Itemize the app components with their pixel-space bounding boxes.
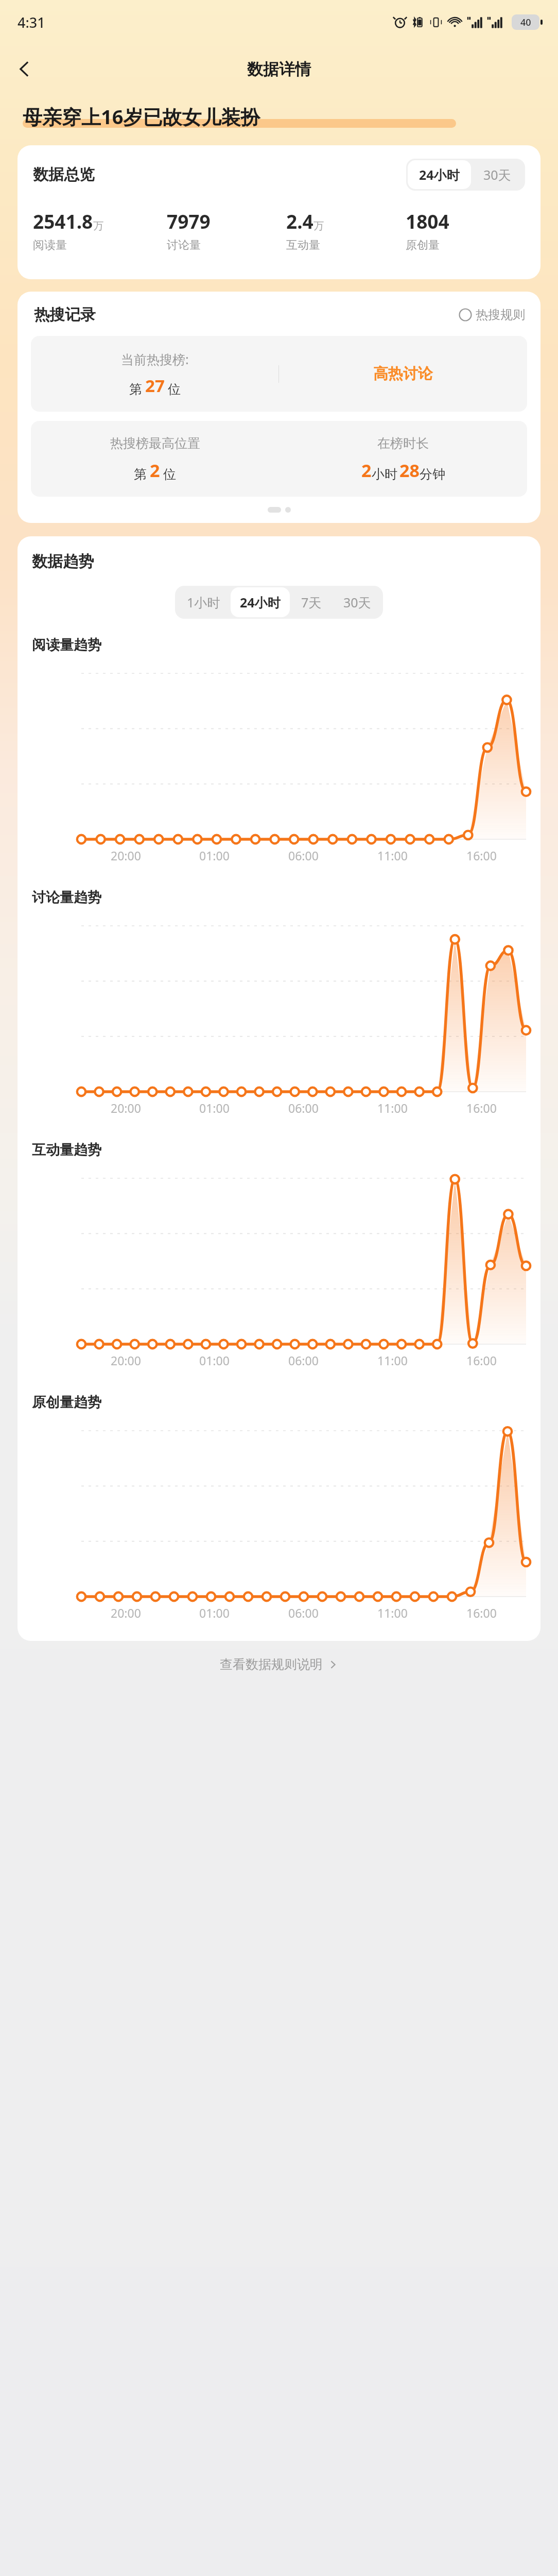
staticText: 互动量 — [286, 238, 320, 252]
staticText: 分钟 — [420, 466, 445, 482]
staticText: 热搜记录 — [34, 305, 96, 325]
staticText: 万 — [313, 219, 324, 232]
button[interactable]: 热搜规则 — [457, 305, 527, 325]
staticText: 1小时 — [187, 594, 220, 611]
button[interactable]: 查看数据规则说明 — [0, 1656, 558, 1672]
staticText: 30天 — [483, 166, 511, 183]
button[interactable]: 30天 — [333, 587, 381, 617]
staticText: 位 — [163, 466, 176, 482]
staticText: 万 — [93, 219, 103, 232]
staticText: 2541.8 — [33, 208, 93, 234]
staticText: 27 — [145, 374, 165, 397]
staticText: 原创量 — [406, 238, 440, 252]
staticText: 数据趋势 — [32, 552, 94, 571]
button[interactable]: Back — [6, 50, 43, 88]
staticText: 11:00 — [377, 848, 408, 863]
staticText: 数据总览 — [33, 165, 95, 184]
staticText: 28 — [399, 459, 420, 482]
staticText: 第 — [134, 466, 147, 482]
button[interactable]: 7天 — [290, 587, 333, 617]
staticText: 11:00 — [377, 1352, 408, 1368]
staticText: 2 — [361, 459, 372, 482]
staticText: 20:00 — [111, 1100, 141, 1116]
staticText: 30天 — [343, 594, 371, 611]
staticText: 11:00 — [377, 1100, 408, 1116]
staticText: 查看数据规则说明 — [220, 1656, 323, 1672]
staticText: 7979 — [167, 208, 211, 234]
staticText: 06:00 — [288, 848, 319, 863]
staticText: 母亲穿上16岁已故女儿装扮 — [23, 103, 260, 130]
button[interactable]: 30天 — [471, 160, 524, 189]
staticText: 2.4 — [286, 208, 313, 234]
staticText: 06:00 — [288, 1100, 319, 1116]
staticText: 阅读量 — [33, 238, 67, 252]
staticText: 数据详情 — [247, 59, 311, 79]
button[interactable]: 1小时 — [177, 587, 231, 617]
staticText: 06:00 — [288, 1352, 319, 1368]
staticText: 20:00 — [111, 848, 141, 863]
staticText: 20:00 — [111, 1352, 141, 1368]
staticText: 1804 — [406, 208, 449, 234]
button[interactable]: 24小时 — [408, 160, 471, 189]
staticText: 16:00 — [466, 1100, 497, 1116]
staticText: 热搜榜最高位置 — [110, 435, 200, 451]
staticText: 01:00 — [199, 1352, 230, 1368]
staticText: 热搜规则 — [476, 307, 525, 323]
staticText: 16:00 — [466, 848, 497, 863]
staticText: 16:00 — [466, 1352, 497, 1368]
staticText: 01:00 — [199, 1605, 230, 1621]
staticText: 高热讨论 — [373, 364, 433, 383]
staticText: 01:00 — [199, 848, 230, 863]
staticText: 讨论量 — [167, 238, 201, 252]
staticText: 互动量趋势 — [32, 1141, 101, 1159]
staticText: 小时 — [372, 466, 397, 482]
staticText: 2 — [150, 459, 160, 482]
staticText: 第 — [129, 381, 142, 397]
staticText: 4:31 — [18, 13, 45, 32]
staticText: 阅读量趋势 — [32, 636, 101, 654]
staticText: 当前热搜榜: — [121, 350, 189, 368]
staticText: 在榜时长 — [377, 435, 429, 451]
staticText: 24小时 — [240, 594, 281, 611]
staticText: 11:00 — [377, 1605, 408, 1621]
staticText: 讨论量趋势 — [32, 889, 101, 906]
staticText: 40 — [520, 16, 531, 29]
staticText: 16:00 — [466, 1605, 497, 1621]
staticText: 原创量趋势 — [32, 1394, 101, 1411]
staticText: 位 — [168, 381, 181, 397]
staticText: 06:00 — [288, 1605, 319, 1621]
staticText: 01:00 — [199, 1100, 230, 1116]
button[interactable]: 24小时 — [231, 587, 290, 617]
staticText: 20:00 — [111, 1605, 141, 1621]
staticText: 24小时 — [419, 166, 460, 183]
staticText: 7天 — [301, 594, 322, 611]
